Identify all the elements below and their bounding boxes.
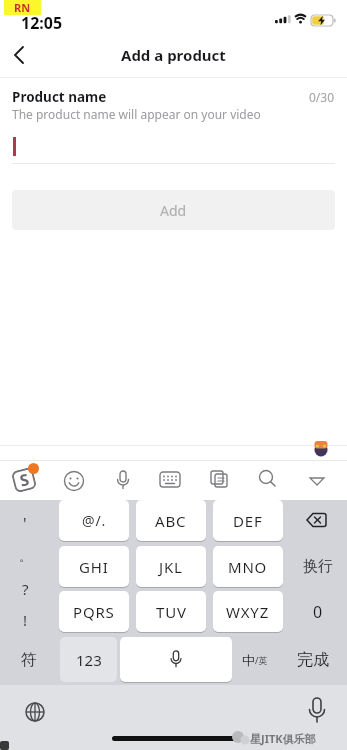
staticText: 0 (313, 601, 323, 623)
button[interactable]: 换行 (288, 546, 347, 587)
staticText: Product name (12, 88, 107, 106)
staticText: S (17, 468, 32, 492)
button[interactable] (302, 695, 332, 725)
staticText: MNO (228, 557, 268, 577)
button[interactable] (302, 466, 332, 496)
staticText: Add (160, 201, 187, 220)
staticText: 星JITK俱乐部 (250, 731, 316, 746)
staticText: PQRS (73, 602, 115, 622)
button[interactable]: ? (8, 575, 42, 603)
staticText: Add a product (121, 45, 226, 65)
button[interactable] (155, 466, 185, 496)
staticText: 换行 (303, 557, 333, 576)
staticText: @/. (82, 511, 106, 530)
button[interactable]: TUV (136, 591, 206, 632)
button[interactable]: DEF (213, 500, 283, 541)
staticText: /英 (255, 654, 268, 666)
button[interactable]: @/. (59, 500, 129, 541)
staticText: ' (23, 513, 27, 535)
button[interactable] (252, 466, 282, 496)
button[interactable]: 123 (60, 637, 117, 682)
staticText: 。 (19, 548, 32, 564)
button[interactable] (9, 466, 39, 496)
staticText: TUV (156, 602, 187, 622)
button[interactable]: PQRS (59, 591, 129, 632)
staticText: ABC (155, 511, 187, 531)
staticText: 完成 (297, 650, 329, 670)
button[interactable]: 。 (8, 542, 42, 570)
button[interactable]: 0 (288, 591, 347, 632)
staticText: GHI (79, 557, 109, 577)
button[interactable]: Add (12, 190, 335, 230)
button[interactable] (20, 697, 50, 727)
button[interactable]: 中 (235, 637, 275, 682)
button[interactable] (288, 500, 347, 541)
button[interactable] (204, 466, 234, 496)
button[interactable]: JKL (136, 546, 206, 587)
button[interactable]: GHI (59, 546, 129, 587)
button[interactable] (6, 41, 36, 69)
staticText: DEF (233, 511, 263, 531)
button[interactable]: 完成 (278, 637, 347, 682)
button[interactable] (120, 637, 232, 682)
button[interactable]: ! (8, 606, 42, 634)
button[interactable]: MNO (213, 546, 283, 587)
staticText: ? (22, 579, 29, 599)
staticText: RN (14, 0, 31, 15)
staticText: JKL (159, 557, 183, 577)
button[interactable]: ' (8, 510, 42, 538)
staticText: WXYZ (226, 602, 270, 622)
button[interactable] (108, 466, 138, 496)
staticText: 12:05 (21, 12, 63, 30)
button[interactable]: ABC (136, 500, 206, 541)
staticText: 123 (76, 650, 102, 670)
staticText: 中 (242, 652, 255, 668)
button[interactable] (59, 466, 89, 496)
staticText: 0/30 (309, 89, 335, 105)
staticText: 符 (21, 650, 37, 670)
staticText: The product name will appear on your vid… (12, 106, 261, 122)
staticText: ! (23, 610, 28, 630)
button[interactable]: WXYZ (213, 591, 283, 632)
button[interactable]: 符 (0, 637, 57, 682)
